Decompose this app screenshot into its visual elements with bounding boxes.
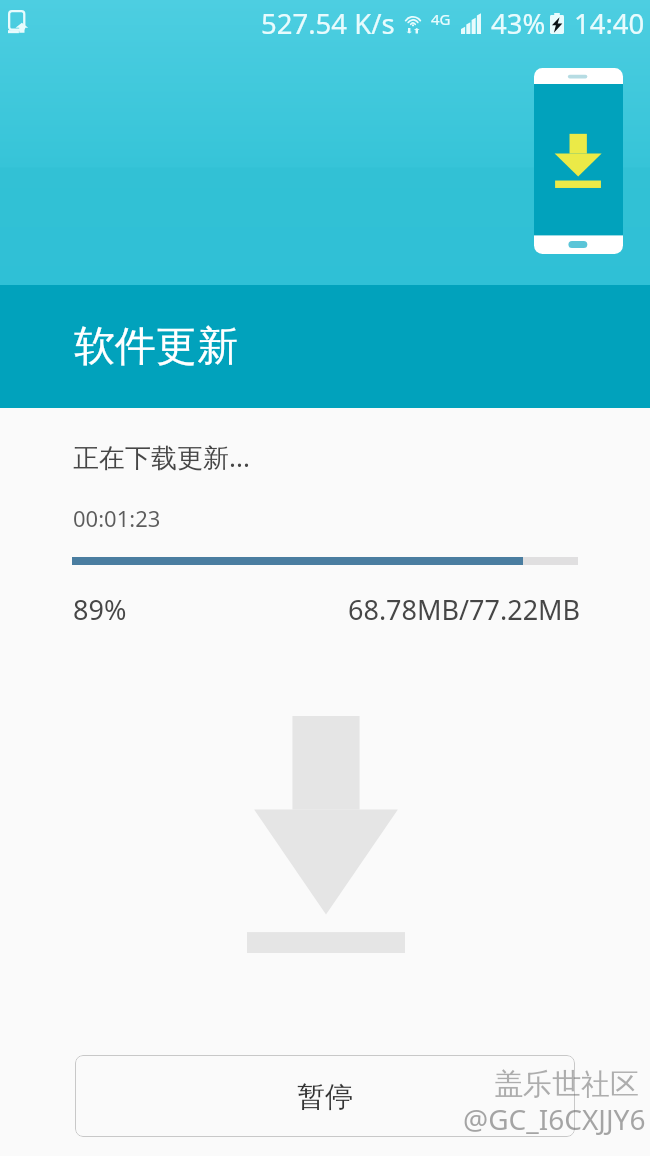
staticText: 43% [491, 5, 546, 42]
staticText: 14:40 [574, 5, 645, 42]
staticText: 软件更新 [74, 321, 238, 373]
button[interactable]: 暂停 [75, 1055, 575, 1137]
other: Software update notification [8, 10, 29, 36]
staticText: 527.54 K/s [261, 5, 395, 42]
staticText: 暂停 [297, 1079, 353, 1114]
staticText: 4G [431, 9, 451, 29]
staticText: 00:01:23 [73, 503, 161, 533]
staticText: @GC_I6CXJJY6 [463, 1100, 646, 1138]
staticText: 盖乐世社区 [494, 1066, 639, 1103]
staticText: 68.78MB/77.22MB [348, 591, 581, 628]
staticText: 正在下载更新... [73, 439, 250, 475]
staticText: 89% [73, 591, 127, 628]
